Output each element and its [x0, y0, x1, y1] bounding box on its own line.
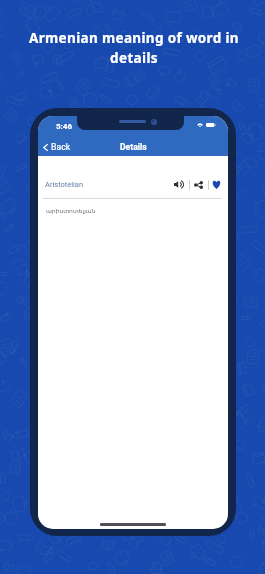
button[interactable]: Back [41, 140, 79, 154]
button[interactable]: Share [189, 177, 207, 193]
button[interactable]: Add to favourites [207, 176, 225, 192]
staticText: 5:46 [56, 122, 73, 131]
staticText: Details [120, 142, 147, 152]
button[interactable]: Play pronunciation [170, 176, 188, 192]
staticText: Back [51, 142, 71, 152]
staticText: Aristotelian [45, 180, 84, 189]
staticText: Armenian meaning of word in details [29, 29, 239, 67]
staticText: արիստոտելյան [46, 207, 96, 214]
